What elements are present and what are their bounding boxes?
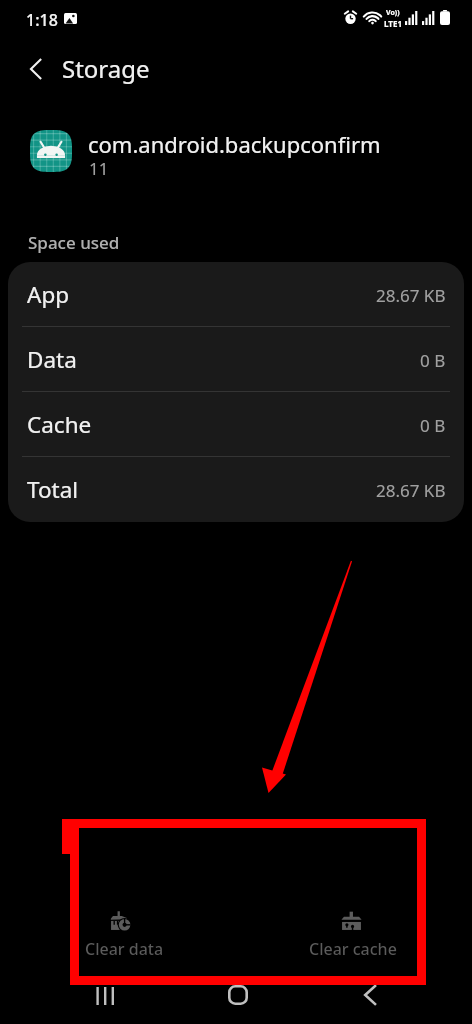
- button[interactable]: Home: [192, 975, 284, 1015]
- button[interactable]: Data: [8, 327, 464, 392]
- staticText: 1:18: [26, 9, 58, 31]
- staticText: Clear data: [85, 938, 164, 960]
- staticText: Cache: [27, 409, 92, 440]
- button[interactable]: Back: [324, 975, 416, 1015]
- staticText: Total: [27, 474, 79, 505]
- button[interactable]: Recents: [58, 976, 150, 1016]
- button[interactable]: Total: [8, 457, 464, 522]
- button[interactable]: Back: [16, 51, 56, 87]
- button[interactable]: Cache: [8, 392, 464, 457]
- button[interactable]: Clear cache: [252, 824, 452, 979]
- staticText: Space used: [28, 231, 120, 254]
- staticText: Clear cache: [309, 938, 397, 960]
- button[interactable]: App: [8, 262, 464, 327]
- button[interactable]: Clear data: [22, 824, 222, 979]
- staticText: App: [27, 279, 70, 310]
- staticText: Storage: [62, 52, 150, 85]
- staticText: 0 B: [420, 349, 446, 372]
- staticText: com.android.backupconfirm: [88, 129, 381, 159]
- staticText: 28.67 KB: [376, 479, 446, 502]
- staticText: LTE1: [384, 18, 402, 29]
- staticText: 0 B: [420, 414, 446, 437]
- staticText: Data: [27, 344, 77, 375]
- staticText: Vo)): [386, 8, 400, 18]
- staticText: 28.67 KB: [376, 284, 446, 307]
- staticText: 11: [89, 157, 109, 180]
